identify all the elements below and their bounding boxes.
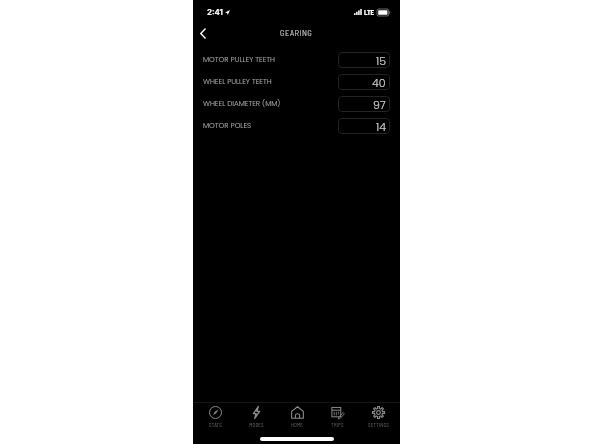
staticText: GEARING: [280, 27, 313, 37]
button[interactable]: MOTOR PULLEY TEETH: [193, 49, 400, 71]
button[interactable]: 15: [338, 52, 390, 68]
button[interactable]: Settings: [359, 406, 397, 427]
staticText: 40: [372, 75, 386, 90]
button[interactable]: Stats: [196, 406, 234, 427]
staticText: 14: [376, 119, 386, 134]
staticText: LTE: [364, 8, 375, 16]
staticText: 15: [376, 53, 386, 68]
staticText: SETTINGS: [368, 422, 389, 427]
staticText: 2:41: [207, 7, 223, 17]
staticText: TRIPS: [331, 422, 344, 427]
button[interactable]: 40: [338, 74, 390, 90]
button[interactable]: Trips: [318, 406, 356, 427]
button[interactable]: 97: [338, 96, 390, 112]
staticText: 97: [373, 97, 386, 112]
staticText: HOME: [291, 422, 303, 427]
button[interactable]: 14: [338, 118, 390, 134]
button[interactable]: WHEEL DIAMETER (MM): [193, 93, 400, 115]
staticText: MOTOR PULLEY TEETH: [203, 54, 276, 64]
staticText: STATS: [209, 422, 222, 427]
staticText: WHEEL PULLEY TEETH: [203, 76, 272, 86]
button[interactable]: Home: [278, 406, 316, 427]
button[interactable]: Back: [193, 23, 213, 43]
button[interactable]: Modes: [237, 406, 275, 427]
button[interactable]: WHEEL PULLEY TEETH: [193, 71, 400, 93]
button[interactable]: MOTOR POLES: [193, 115, 400, 137]
staticText: MOTOR POLES: [203, 120, 252, 130]
staticText: WHEEL DIAMETER (MM): [203, 98, 281, 108]
staticText: MODES: [249, 422, 264, 427]
